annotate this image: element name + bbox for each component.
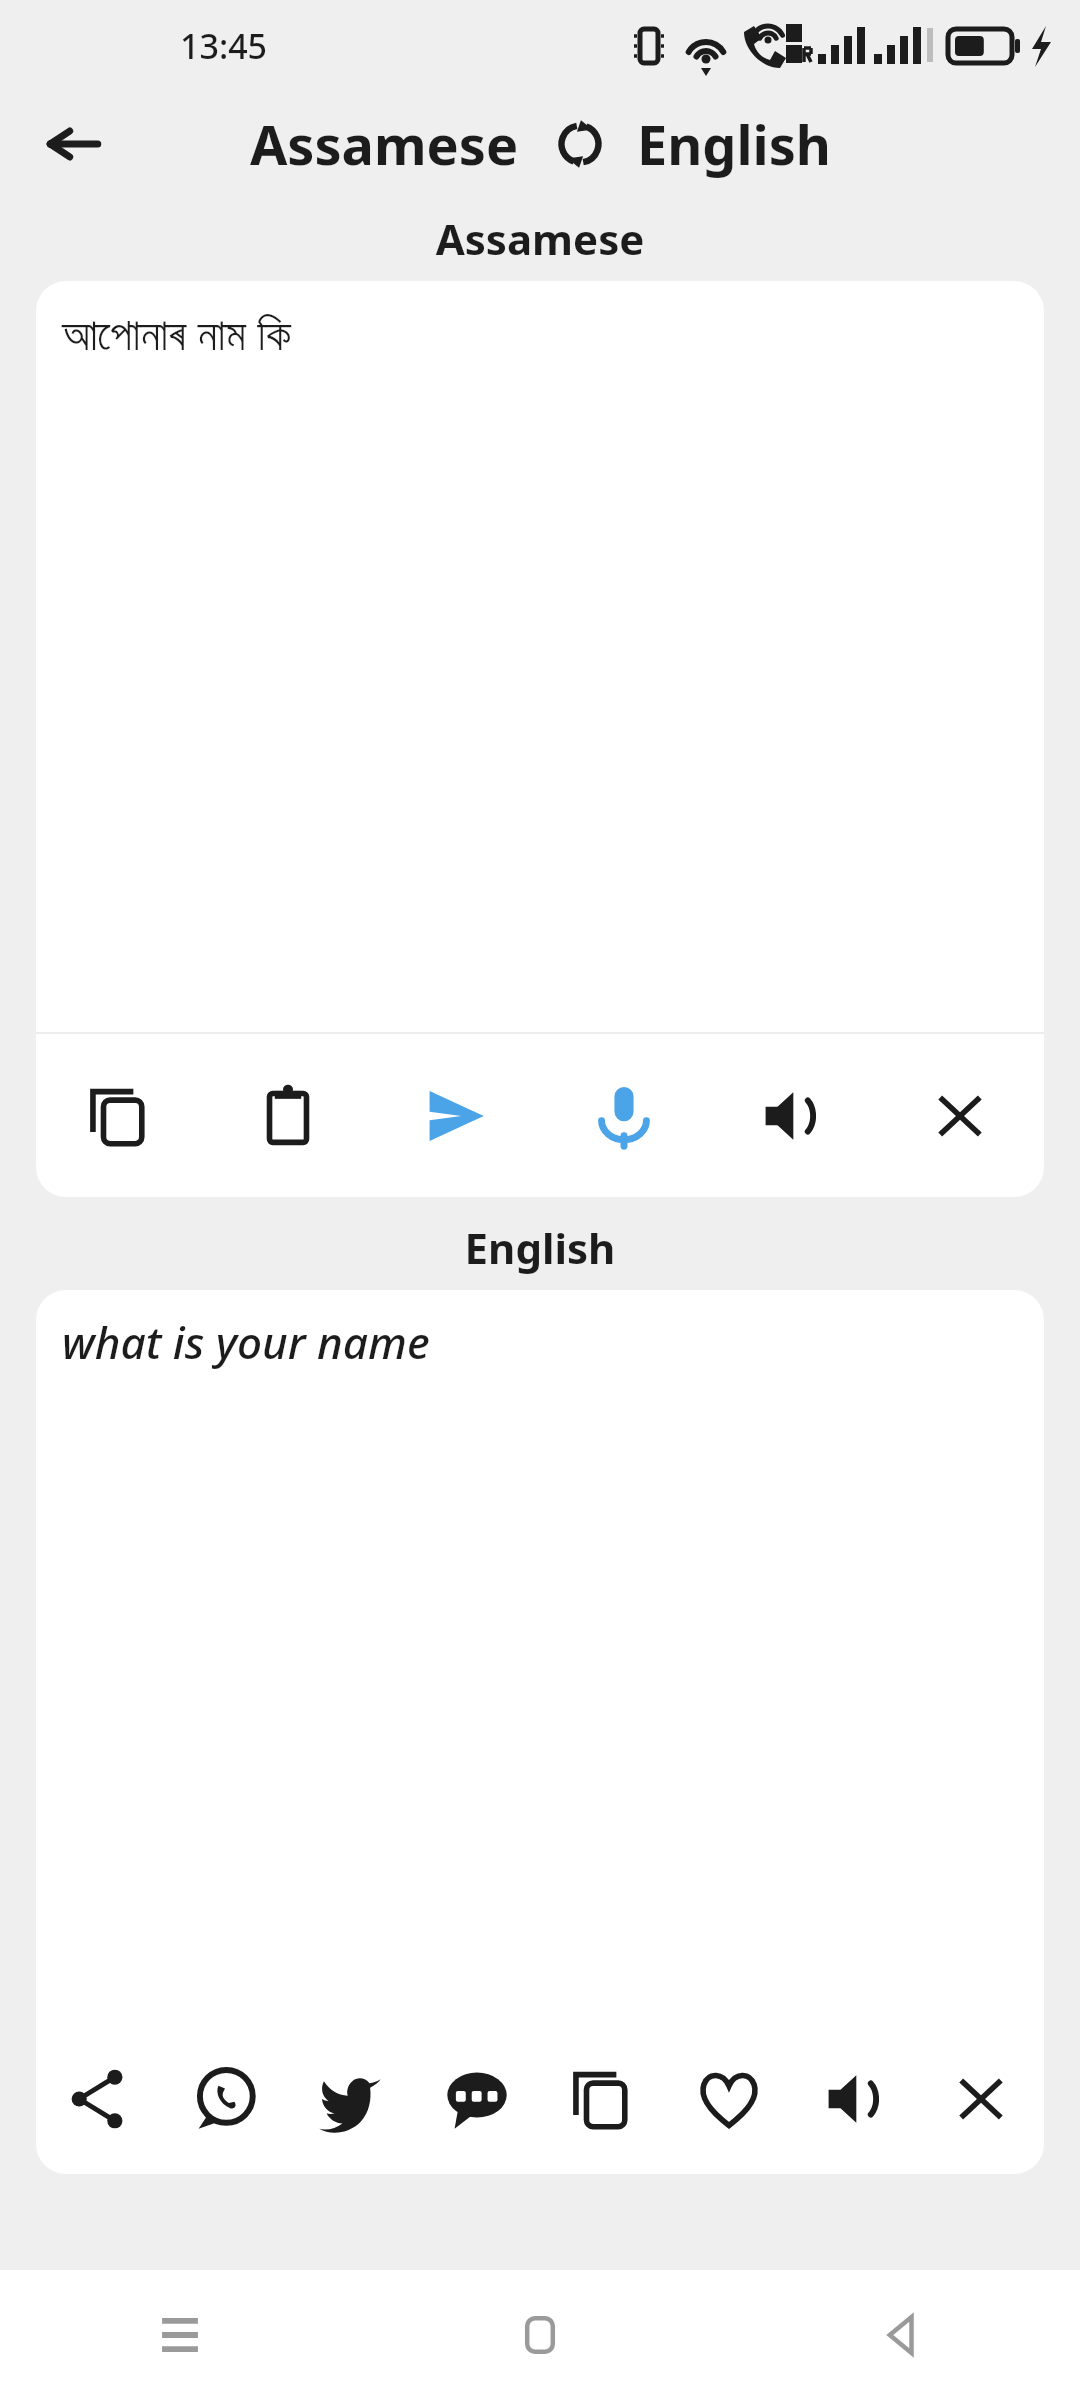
- staticText: 13:45: [180, 23, 268, 69]
- button[interactable]: Back: [30, 100, 118, 188]
- button[interactable]: Recents: [0, 2270, 360, 2400]
- button[interactable]: Back: [720, 2270, 1080, 2400]
- staticText: আপোনাৰ নাম কি: [62, 303, 291, 363]
- staticText: what is your name: [62, 1312, 430, 1372]
- button[interactable]: Clear: [918, 2024, 1044, 2174]
- button[interactable]: Share: [36, 2024, 162, 2174]
- button[interactable]: Paste: [204, 1034, 372, 1197]
- button[interactable]: Speak: [708, 1034, 876, 1197]
- button[interactable]: Speak: [792, 2024, 918, 2174]
- button[interactable]: Twitter: [288, 2024, 414, 2174]
- button[interactable]: Home: [360, 2270, 720, 2400]
- staticText: Assamese: [0, 210, 1080, 267]
- button[interactable]: Favourite: [666, 2024, 792, 2174]
- button[interactable]: Copy: [36, 1034, 204, 1197]
- button[interactable]: English: [637, 107, 831, 181]
- button[interactable]: Assamese: [250, 107, 519, 181]
- staticText: English: [0, 1219, 1080, 1276]
- button[interactable]: Swap languages: [545, 109, 615, 179]
- button[interactable]: SMS: [414, 2024, 540, 2174]
- staticText: Assamese: [250, 107, 519, 181]
- button[interactable]: Clear: [876, 1034, 1044, 1197]
- button[interactable]: Voice input: [540, 1034, 708, 1197]
- button[interactable]: WhatsApp: [162, 2024, 288, 2174]
- button[interactable]: Copy: [540, 2024, 666, 2174]
- button[interactable]: Translate: [372, 1034, 540, 1197]
- staticText: English: [637, 107, 831, 181]
